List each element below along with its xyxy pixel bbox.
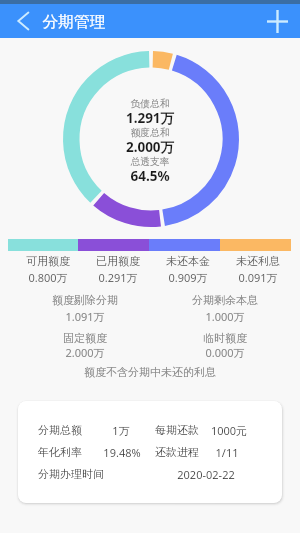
staticText: 2.000万 (75, 138, 225, 156)
button[interactable]: Add (261, 5, 293, 37)
staticText: 临时额度 (150, 331, 300, 345)
staticText: 未还利息 (183, 254, 300, 268)
staticText: 额度剔除分期 (10, 293, 160, 307)
staticText: 分期管理 (42, 12, 106, 32)
staticText: 0.091万 (183, 270, 300, 285)
staticText: 年化利率 (38, 445, 82, 459)
button[interactable] (18, 401, 282, 503)
staticText: 1000元 (154, 423, 300, 438)
staticText: 负债总和 (75, 98, 225, 110)
staticText: 2020-02-22 (131, 467, 281, 482)
staticText: 额度不含分期中未还的利息 (75, 365, 225, 379)
staticText: 1万 (46, 423, 196, 438)
staticText: 总透支率 (75, 156, 225, 168)
staticText: 1.091万 (10, 309, 160, 324)
staticText: 分期剩余本息 (150, 293, 300, 307)
button[interactable]: Back (8, 6, 38, 36)
staticText: 0.909万 (113, 270, 263, 285)
staticText: 额度总和 (75, 127, 225, 139)
staticText: 0.000万 (150, 345, 300, 360)
staticText: 19.48% (47, 445, 197, 460)
staticText: 固定额度 (10, 331, 160, 345)
staticText: 0.291万 (43, 270, 193, 285)
staticText: 0.800万 (0, 270, 123, 285)
staticText: 已用额度 (43, 254, 193, 268)
staticText: 还款进程 (155, 445, 199, 459)
staticText: 每期还款 (155, 423, 199, 437)
staticText: 2.000万 (10, 345, 160, 360)
staticText: 分期总额 (38, 423, 82, 437)
staticText: 1.000万 (150, 309, 300, 324)
staticText: 1/11 (152, 445, 300, 460)
staticText: 分期办理时间 (38, 467, 104, 481)
staticText: 1.291万 (75, 109, 225, 127)
staticText: 未还本金 (113, 254, 263, 268)
staticText: 可用额度 (0, 254, 123, 268)
staticText: 64.5% (75, 167, 225, 185)
